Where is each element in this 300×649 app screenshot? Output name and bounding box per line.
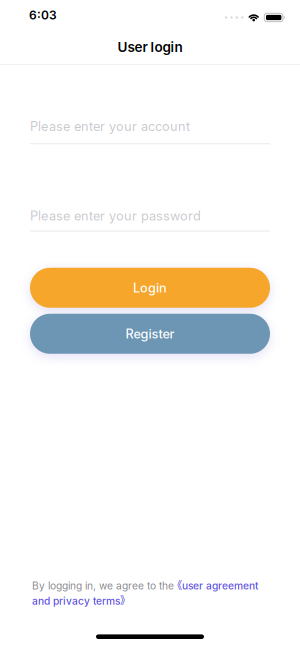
staticText: 《: [172, 578, 182, 593]
button[interactable]: Register: [30, 314, 270, 354]
staticText: 6:03: [29, 8, 57, 22]
button[interactable]: and privacy terms: [32, 593, 130, 608]
staticText: User login: [117, 39, 182, 55]
staticText: and privacy terms: [32, 595, 120, 607]
staticText: user agreement: [182, 580, 258, 592]
staticText: Please enter your password: [30, 208, 201, 223]
button[interactable]: Please enter your password: [30, 208, 270, 232]
button[interactable]: 《: [172, 578, 258, 593]
button[interactable]: Please enter your account: [30, 119, 270, 144]
staticText: By logging in, we agree to the: [32, 580, 174, 592]
staticText: Please enter your account: [30, 119, 190, 134]
staticText: Login: [133, 280, 167, 295]
staticText: 》: [120, 593, 130, 608]
staticText: Register: [125, 326, 174, 341]
button[interactable]: Login: [30, 268, 270, 308]
